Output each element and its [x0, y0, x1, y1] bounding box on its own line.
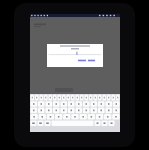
button[interactable] — [88, 59, 95, 62]
other: Keyboard — [30, 94, 120, 132]
button[interactable] — [78, 59, 86, 62]
